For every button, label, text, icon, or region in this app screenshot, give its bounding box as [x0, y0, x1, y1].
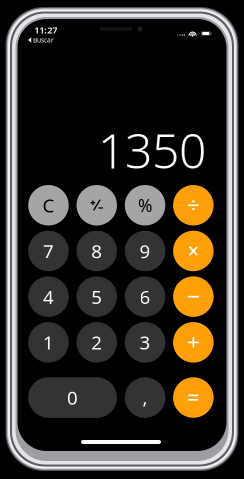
button[interactable]: , — [125, 377, 165, 418]
staticText: 2 — [91, 330, 102, 355]
staticText: 9 — [140, 239, 151, 263]
staticText: , — [143, 385, 148, 410]
staticText: 3 — [140, 330, 151, 355]
button[interactable]: Multiply — [173, 231, 214, 271]
staticText: 6 — [140, 284, 151, 309]
button[interactable]: Minus — [173, 276, 214, 317]
staticText: 7 — [43, 239, 54, 263]
button[interactable]: 5 — [76, 276, 117, 317]
button[interactable]: 2 — [76, 322, 117, 363]
button[interactable]: 1 — [28, 322, 69, 363]
button[interactable]: Equals — [173, 377, 214, 418]
button[interactable]: Buscar — [28, 34, 54, 45]
button[interactable]: Divide — [173, 185, 214, 225]
staticText: C — [42, 193, 54, 218]
staticText: 5 — [91, 284, 102, 309]
staticText: 4 — [43, 284, 54, 309]
button[interactable]: Plus minus — [76, 185, 117, 225]
staticText: % — [138, 194, 152, 217]
staticText: 8 — [91, 239, 102, 263]
button[interactable]: 6 — [125, 276, 165, 317]
staticText: 0 — [67, 385, 78, 410]
staticText: 1 — [43, 330, 54, 355]
staticText: Buscar — [33, 36, 54, 44]
button[interactable]: Percent — [125, 185, 165, 225]
button[interactable]: 9 — [125, 231, 165, 271]
button[interactable]: 8 — [76, 231, 117, 271]
button[interactable]: 3 — [125, 322, 165, 363]
button[interactable]: 7 — [28, 231, 69, 271]
staticText: 1350 — [98, 118, 206, 182]
staticText: 11:27 — [34, 24, 57, 36]
button[interactable]: 4 — [28, 276, 69, 317]
button[interactable]: Clear — [28, 185, 69, 225]
button[interactable]: 0 — [28, 377, 117, 418]
button[interactable]: Plus — [173, 322, 214, 363]
